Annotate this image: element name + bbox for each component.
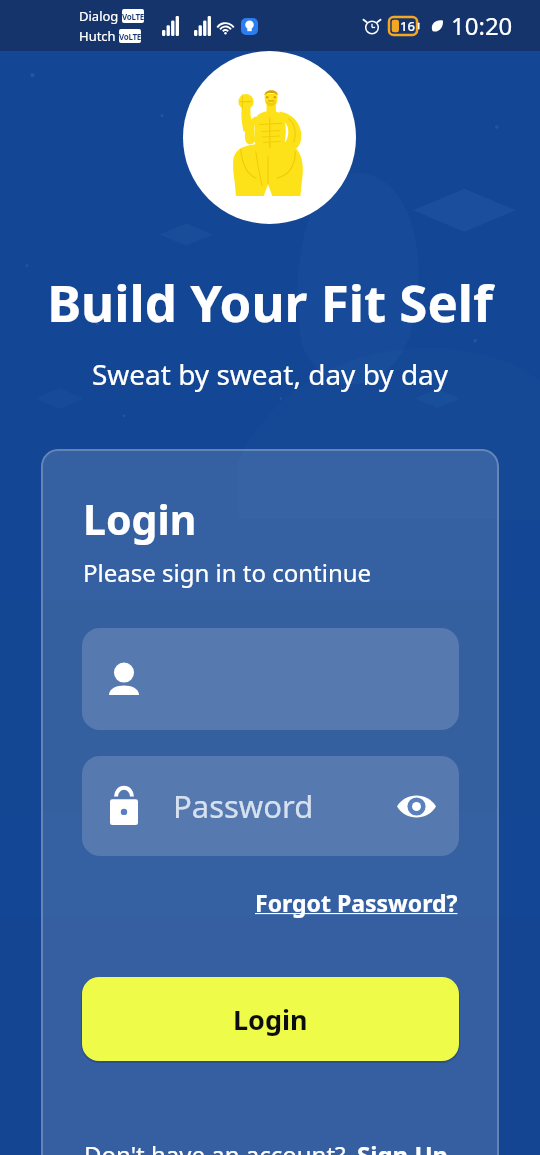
staticText: Login — [233, 1001, 308, 1038]
staticText: Dialog — [79, 7, 119, 25]
button[interactable]: Login — [82, 977, 459, 1061]
button[interactable] — [82, 628, 459, 730]
staticText: Login — [83, 491, 197, 547]
staticText: Sign Up — [357, 1138, 448, 1155]
staticText: 10:20 — [451, 9, 513, 42]
button[interactable]: Forgot Password? — [255, 879, 458, 926]
staticText: Build Your Fit Self — [0, 267, 540, 336]
staticText: Hutch — [79, 27, 116, 45]
staticText: Please sign in to continue — [83, 556, 372, 589]
button[interactable]: Password — [82, 756, 459, 856]
staticText: 16 — [400, 17, 415, 35]
staticText: Don't have an account? — [84, 1138, 346, 1155]
button[interactable]: Sign Up — [357, 1132, 448, 1155]
staticText: VoLTE — [119, 31, 141, 42]
staticText: Password — [173, 785, 314, 827]
button[interactable]: Show password — [392, 782, 440, 830]
staticText: VoLTE — [122, 11, 144, 22]
staticText: Forgot Password? — [255, 887, 458, 918]
staticText: Sweat by sweat, day by day — [0, 355, 540, 393]
